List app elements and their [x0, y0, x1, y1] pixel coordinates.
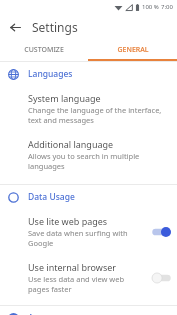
button[interactable]: Use internal browser [0, 255, 177, 301]
staticText: CUSTOMIZE [24, 45, 64, 55]
button[interactable]: Back [7, 19, 23, 35]
button[interactable]: On [151, 226, 172, 238]
staticText: Use internal browser [28, 261, 117, 273]
staticText: Additional language [28, 138, 114, 150]
staticText: GENERAL [117, 45, 149, 55]
staticText: 7:00 [161, 3, 173, 11]
button[interactable]: System language [0, 86, 177, 132]
staticText: Allows you to search in multiple languag… [28, 151, 167, 171]
staticText: Use less data and view web pages faster [28, 274, 147, 294]
staticText: Use lite web pages [28, 215, 108, 227]
staticText: Settings [32, 19, 78, 35]
staticText: Account [28, 312, 62, 315]
staticText: System language [28, 92, 101, 104]
button[interactable]: Use lite web pages [0, 209, 177, 255]
button[interactable]: Additional language [0, 132, 177, 178]
staticText: Languages [28, 68, 73, 80]
button[interactable]: CUSTOMIZE [0, 40, 88, 59]
button[interactable]: Off [151, 272, 172, 284]
staticText: Change the language of the interface, te… [28, 105, 167, 125]
button[interactable]: GENERAL [88, 40, 177, 59]
staticText: 100 % [142, 3, 159, 11]
staticText: Save data when surfing with Google [28, 228, 147, 248]
staticText: Data Usage [28, 191, 75, 203]
